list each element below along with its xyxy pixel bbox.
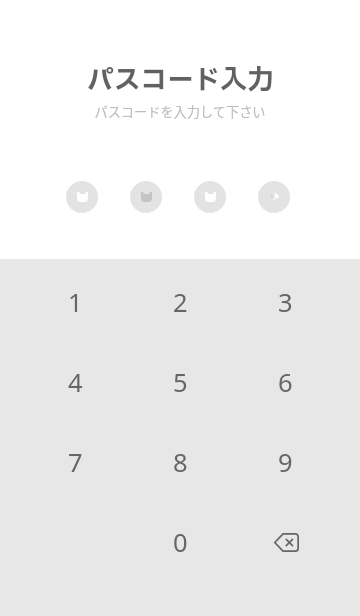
staticText: 7 bbox=[68, 445, 83, 480]
button[interactable]: 5 bbox=[128, 342, 233, 422]
staticText: 1 bbox=[68, 285, 83, 320]
staticText: 0 bbox=[173, 525, 188, 560]
button[interactable]: 9 bbox=[233, 422, 338, 502]
other: Passcode digit bbox=[258, 181, 290, 213]
button[interactable]: 8 bbox=[128, 422, 233, 502]
other: Passcode digit bbox=[66, 181, 98, 213]
button[interactable]: 3 bbox=[233, 262, 338, 342]
button[interactable]: 4 bbox=[23, 342, 128, 422]
button[interactable]: 1 bbox=[23, 262, 128, 342]
staticText: 9 bbox=[278, 445, 293, 480]
staticText: 5 bbox=[173, 365, 188, 400]
staticText: 4 bbox=[68, 365, 83, 400]
button[interactable]: 6 bbox=[233, 342, 338, 422]
staticText: パスコードを入力して下さい bbox=[94, 102, 266, 121]
other: Passcode digit bbox=[194, 181, 226, 213]
button[interactable]: 7 bbox=[23, 422, 128, 502]
staticText: パスコード入力 bbox=[87, 61, 274, 101]
staticText: 6 bbox=[278, 365, 293, 400]
other: Passcode digit bbox=[130, 181, 162, 213]
button[interactable]: 2 bbox=[128, 262, 233, 342]
staticText: 8 bbox=[173, 445, 188, 480]
staticText: 2 bbox=[173, 285, 188, 320]
button[interactable]: Delete bbox=[233, 502, 338, 582]
button[interactable]: 0 bbox=[128, 502, 233, 582]
staticText: 3 bbox=[278, 285, 293, 320]
